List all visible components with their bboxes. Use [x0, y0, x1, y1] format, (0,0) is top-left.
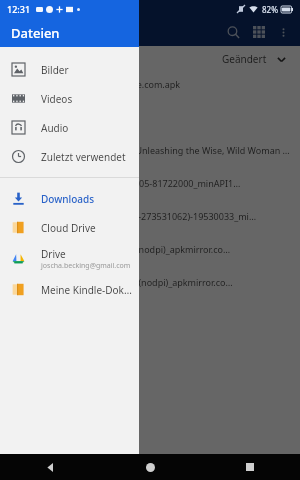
staticText: Android-App — [40, 222, 82, 232]
button[interactable]: samsung_5.30_(100300-273531062)-19530033… — [0, 204, 300, 237]
button[interactable]: Cloud Drive — [0, 213, 139, 242]
staticText: Meine Kindle-Dokumen… — [41, 283, 133, 297]
staticText: Drive — [41, 247, 66, 261]
button[interactable]: com.app.installer.apk — [0, 303, 300, 336]
button[interactable]: Zuletzt verwendet — [0, 142, 139, 171]
staticText: Videos — [41, 92, 73, 106]
button[interactable]: Drive — [0, 242, 139, 275]
staticText: Zuletzt verwendet — [41, 150, 126, 164]
button[interactable]: magisk.apk — [0, 105, 300, 138]
button[interactable]: Back — [0, 454, 100, 480]
staticText: Audio — [41, 121, 69, 135]
button[interactable]: Bilder — [0, 55, 139, 84]
staticText: samsung_5.30_(100300-273531062)-19530033… — [40, 210, 257, 222]
button[interactable]: Meine Kindle-Dokumen… — [0, 275, 139, 304]
button[interactable]: Search — [220, 19, 246, 45]
staticText: Dokument — [40, 156, 75, 166]
button[interactable]: setup.apk — [0, 336, 300, 369]
staticText: app_7.1.2-25_minAPI23(nodpi)_apkmirror.c… — [40, 276, 233, 288]
button[interactable]: Grid view — [246, 19, 272, 45]
staticText: fullretail_0_PR_276779105-81722000_minAP… — [40, 177, 241, 189]
staticText: 12:31 — [7, 3, 31, 15]
button[interactable]: Wild-Woman-Guide to Unleashing the Wise,… — [0, 138, 300, 171]
button[interactable]: Audio — [0, 113, 139, 142]
staticText: Bilder — [41, 63, 69, 77]
staticText: Android-App — [40, 90, 82, 100]
staticText: Downloads — [41, 192, 95, 206]
button[interactable]: Geändert — [218, 49, 290, 69]
button[interactable]: Recent apps — [200, 454, 300, 480]
staticText: Android-App — [40, 189, 82, 199]
button[interactable]: Home — [100, 454, 200, 480]
staticText: Cloud Drive — [41, 221, 96, 235]
button[interactable]: v7.22352-28_minAPI28(nodpi)_apkmirror.co… — [0, 237, 300, 270]
staticText: ODIN3_v3.13.1_apkpure.com.apk — [40, 78, 181, 90]
staticText: 82% — [262, 4, 278, 15]
staticText: Wild-Woman-Guide to Unleashing the Wise,… — [40, 144, 290, 156]
button[interactable]: More options — [272, 21, 294, 43]
button[interactable]: Downloads — [0, 184, 139, 213]
staticText: v7.22352-28_minAPI28(nodpi)_apkmirror.co… — [40, 243, 231, 255]
staticText: Android-App — [40, 288, 82, 298]
button[interactable]: ODIN3_v3.13.1_apkpure.com.apk — [0, 72, 300, 105]
staticText: Android-App — [40, 255, 82, 265]
staticText: joscha.becking@gmail.com — [41, 261, 131, 271]
button[interactable]: fullretail_0_PR_276779105-81722000_minAP… — [0, 171, 300, 204]
button[interactable]: app_7.1.2-25_minAPI23(nodpi)_apkmirror.c… — [0, 270, 300, 303]
button[interactable]: Videos — [0, 84, 139, 113]
staticText: Dateien — [11, 24, 60, 42]
staticText: Android-App — [40, 123, 82, 133]
staticText: Geändert — [222, 52, 267, 66]
